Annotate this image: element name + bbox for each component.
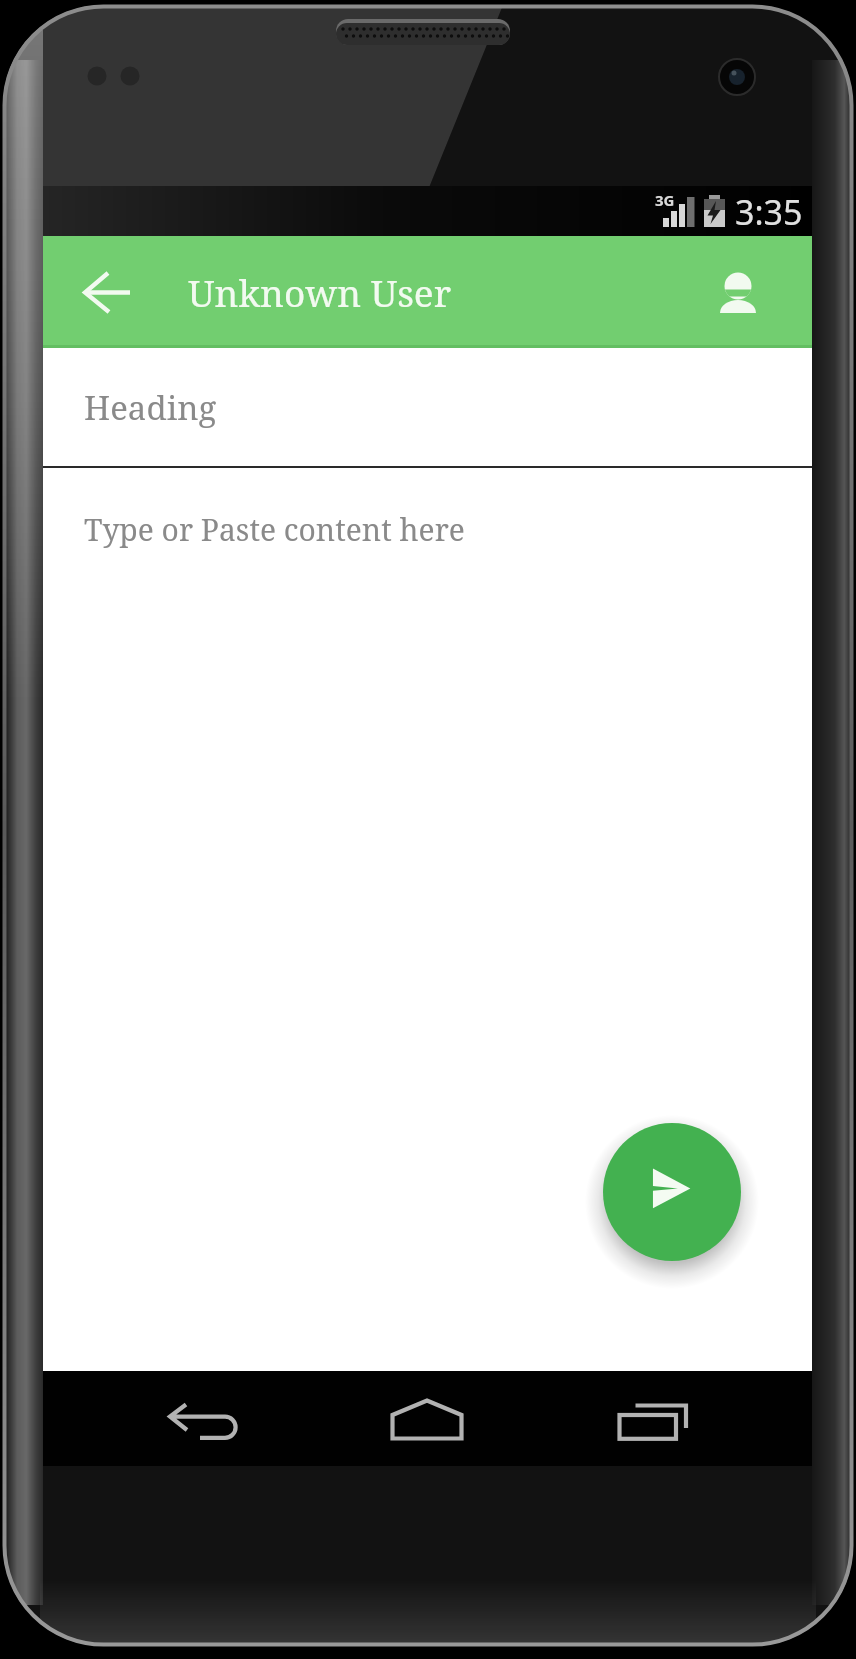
button[interactable] [79,264,135,320]
staticText: Unknown User [188,267,452,317]
button[interactable] [710,268,766,324]
button[interactable]: Type or Paste content here [43,468,812,1371]
button[interactable] [387,1387,467,1451]
staticText: 3:35 [735,189,803,235]
button[interactable] [158,1387,238,1451]
button[interactable] [608,1387,688,1451]
staticText: 3G [655,190,675,210]
button[interactable] [583,1103,761,1281]
staticText: Type or Paste content here [84,509,465,550]
button[interactable]: Heading [43,348,812,466]
staticText: Heading [84,385,217,430]
